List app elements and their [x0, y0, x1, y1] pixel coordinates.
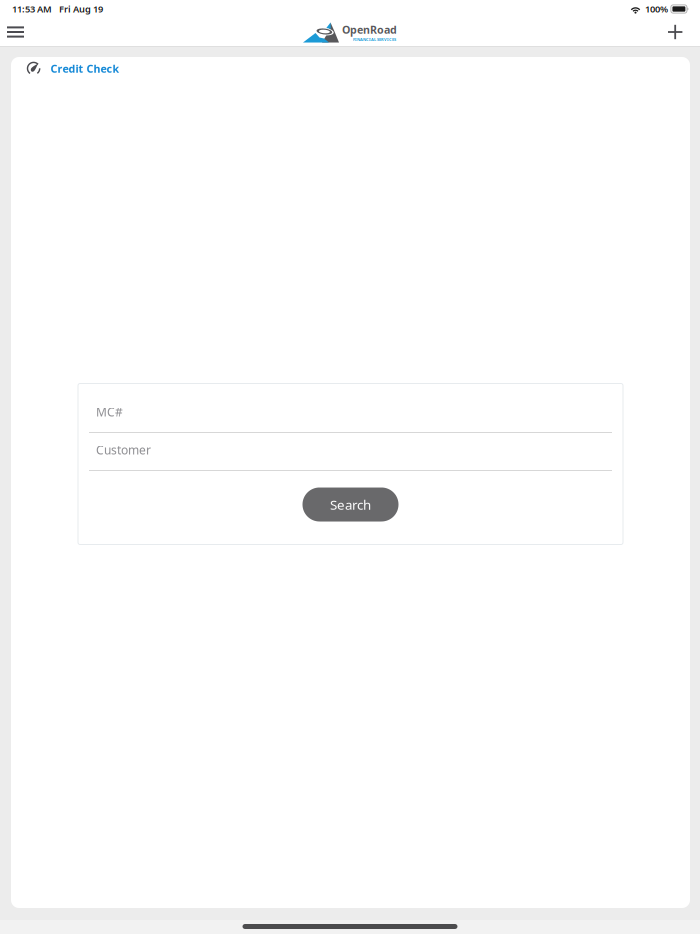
staticText: MC#: [96, 404, 123, 420]
staticText: 100%: [645, 3, 668, 15]
button[interactable]: Add: [658, 18, 700, 46]
staticText: 11:53 AM: [12, 3, 52, 15]
staticText: Fri Aug 19: [59, 3, 103, 15]
staticText: Customer: [96, 442, 151, 458]
staticText: FINANCIAL SERVICES: [353, 37, 396, 42]
button[interactable]: Search: [302, 487, 398, 521]
staticText: Credit Check: [50, 61, 119, 76]
staticText: Search: [330, 496, 371, 513]
button[interactable]: Menu: [0, 18, 34, 46]
staticText: OpenRoad: [342, 22, 397, 37]
